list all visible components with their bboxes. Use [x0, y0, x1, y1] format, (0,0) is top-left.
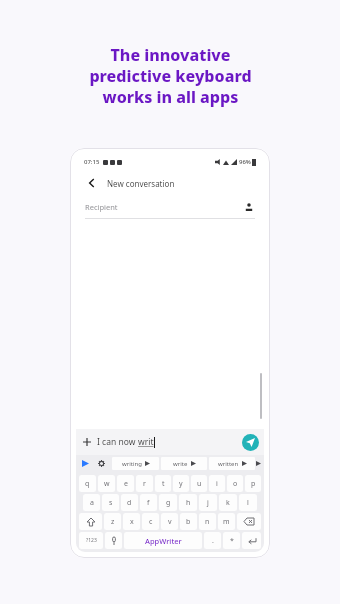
staticText: r — [143, 479, 146, 489]
button[interactable]: t — [155, 475, 171, 492]
staticText: l — [247, 498, 249, 508]
button[interactable]: i — [209, 475, 225, 492]
staticText: writ — [138, 436, 154, 448]
button[interactable] — [79, 513, 102, 530]
button[interactable]: Back — [85, 170, 255, 196]
button[interactable]: Settings — [95, 457, 108, 470]
button[interactable]: n — [199, 513, 216, 530]
staticText: n — [205, 517, 210, 527]
button[interactable]: s — [102, 494, 119, 511]
button[interactable]: e — [117, 475, 134, 492]
staticText: New conversation — [107, 178, 175, 189]
staticText: Recipient — [85, 202, 118, 212]
button[interactable]: Recipient — [85, 196, 255, 218]
button[interactable]: x — [123, 513, 140, 530]
button[interactable]: ?123 — [79, 532, 103, 549]
staticText: u — [197, 479, 202, 489]
staticText: b — [186, 517, 191, 527]
button[interactable]: k — [219, 494, 237, 511]
button[interactable]: r — [136, 475, 153, 492]
staticText: q — [85, 479, 90, 489]
staticText: I can now — [97, 436, 138, 448]
button[interactable]: d — [121, 494, 138, 511]
button[interactable]: Play — [79, 457, 92, 470]
staticText: AppWriter — [145, 536, 182, 546]
staticText: The innovative predictive keyboard works… — [89, 44, 252, 108]
staticText: writing — [122, 460, 142, 468]
button[interactable]: p — [245, 475, 261, 492]
button[interactable]: written — [209, 457, 255, 470]
staticText: e — [124, 479, 128, 489]
button[interactable]: Back — [85, 176, 99, 190]
staticText: v — [168, 517, 172, 527]
button[interactable]: . — [204, 532, 221, 549]
staticText: p — [251, 479, 256, 489]
button[interactable]: write — [161, 457, 207, 470]
button[interactable]: w — [98, 475, 115, 492]
button[interactable]: c — [142, 513, 159, 530]
staticText: ?123 — [86, 537, 97, 544]
staticText: w — [104, 479, 110, 489]
staticText: i — [216, 479, 218, 489]
staticText: m — [223, 517, 230, 527]
button[interactable] — [237, 513, 261, 530]
staticText: * — [230, 536, 234, 546]
button[interactable]: z — [104, 513, 121, 530]
button[interactable]: a — [83, 494, 100, 511]
button[interactable]: g — [159, 494, 177, 511]
staticText: x — [130, 517, 134, 527]
button[interactable]: o — [227, 475, 243, 492]
staticText: y — [179, 479, 183, 489]
staticText: g — [166, 498, 171, 508]
staticText: 96% — [239, 158, 251, 166]
button[interactable]: Send — [242, 434, 259, 451]
staticText: o — [233, 479, 238, 489]
button[interactable]: j — [199, 494, 217, 511]
button[interactable]: Add attachment — [81, 436, 93, 448]
staticText: 07:15 — [84, 158, 100, 166]
button[interactable]: Add attachment — [81, 429, 259, 455]
staticText: . — [212, 536, 214, 546]
button[interactable]: m — [218, 513, 235, 530]
staticText: s — [109, 498, 113, 508]
staticText: t — [162, 479, 165, 489]
staticText: f — [147, 498, 150, 508]
button[interactable]: v — [161, 513, 178, 530]
button[interactable]: h — [179, 494, 197, 511]
button[interactable]: writing — [112, 457, 159, 470]
button[interactable]: f — [140, 494, 157, 511]
staticText: written — [218, 460, 239, 468]
button[interactable] — [105, 532, 122, 549]
button[interactable]: u — [191, 475, 207, 492]
button[interactable]: Contacts — [243, 201, 255, 213]
staticText: j — [207, 498, 209, 508]
button[interactable]: * — [223, 532, 240, 549]
button[interactable]: y — [173, 475, 189, 492]
staticText: k — [226, 498, 230, 508]
staticText: z — [111, 517, 115, 527]
staticText: d — [127, 498, 132, 508]
button[interactable]: b — [180, 513, 197, 530]
button[interactable] — [242, 532, 261, 549]
button[interactable]: l — [239, 494, 257, 511]
button[interactable]: AppWriter — [124, 532, 202, 549]
button[interactable]: q — [79, 475, 96, 492]
staticText: a — [90, 498, 94, 508]
staticText: h — [186, 498, 191, 508]
staticText: c — [149, 517, 153, 527]
staticText: write — [173, 460, 188, 468]
